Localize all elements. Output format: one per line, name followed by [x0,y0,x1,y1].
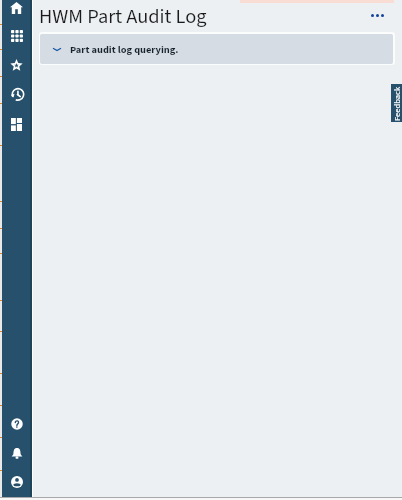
button[interactable]: Account [2,470,31,494]
button[interactable]: Favorites [2,53,31,77]
button[interactable]: Notifications [2,441,31,465]
button[interactable]: More options [365,8,389,23]
button[interactable]: Home [2,0,31,20]
button[interactable]: Apps [2,24,31,48]
staticText: Part audit log querying. [70,42,179,57]
button[interactable]: History [2,82,31,107]
staticText: Feedback [391,86,402,121]
button[interactable]: Help [2,412,31,436]
button[interactable]: Feedback [391,84,402,122]
staticText: HWM Part Audit Log [39,2,207,31]
button[interactable]: Dashboard [2,112,31,137]
button[interactable]: Part audit log querying. [40,34,393,64]
